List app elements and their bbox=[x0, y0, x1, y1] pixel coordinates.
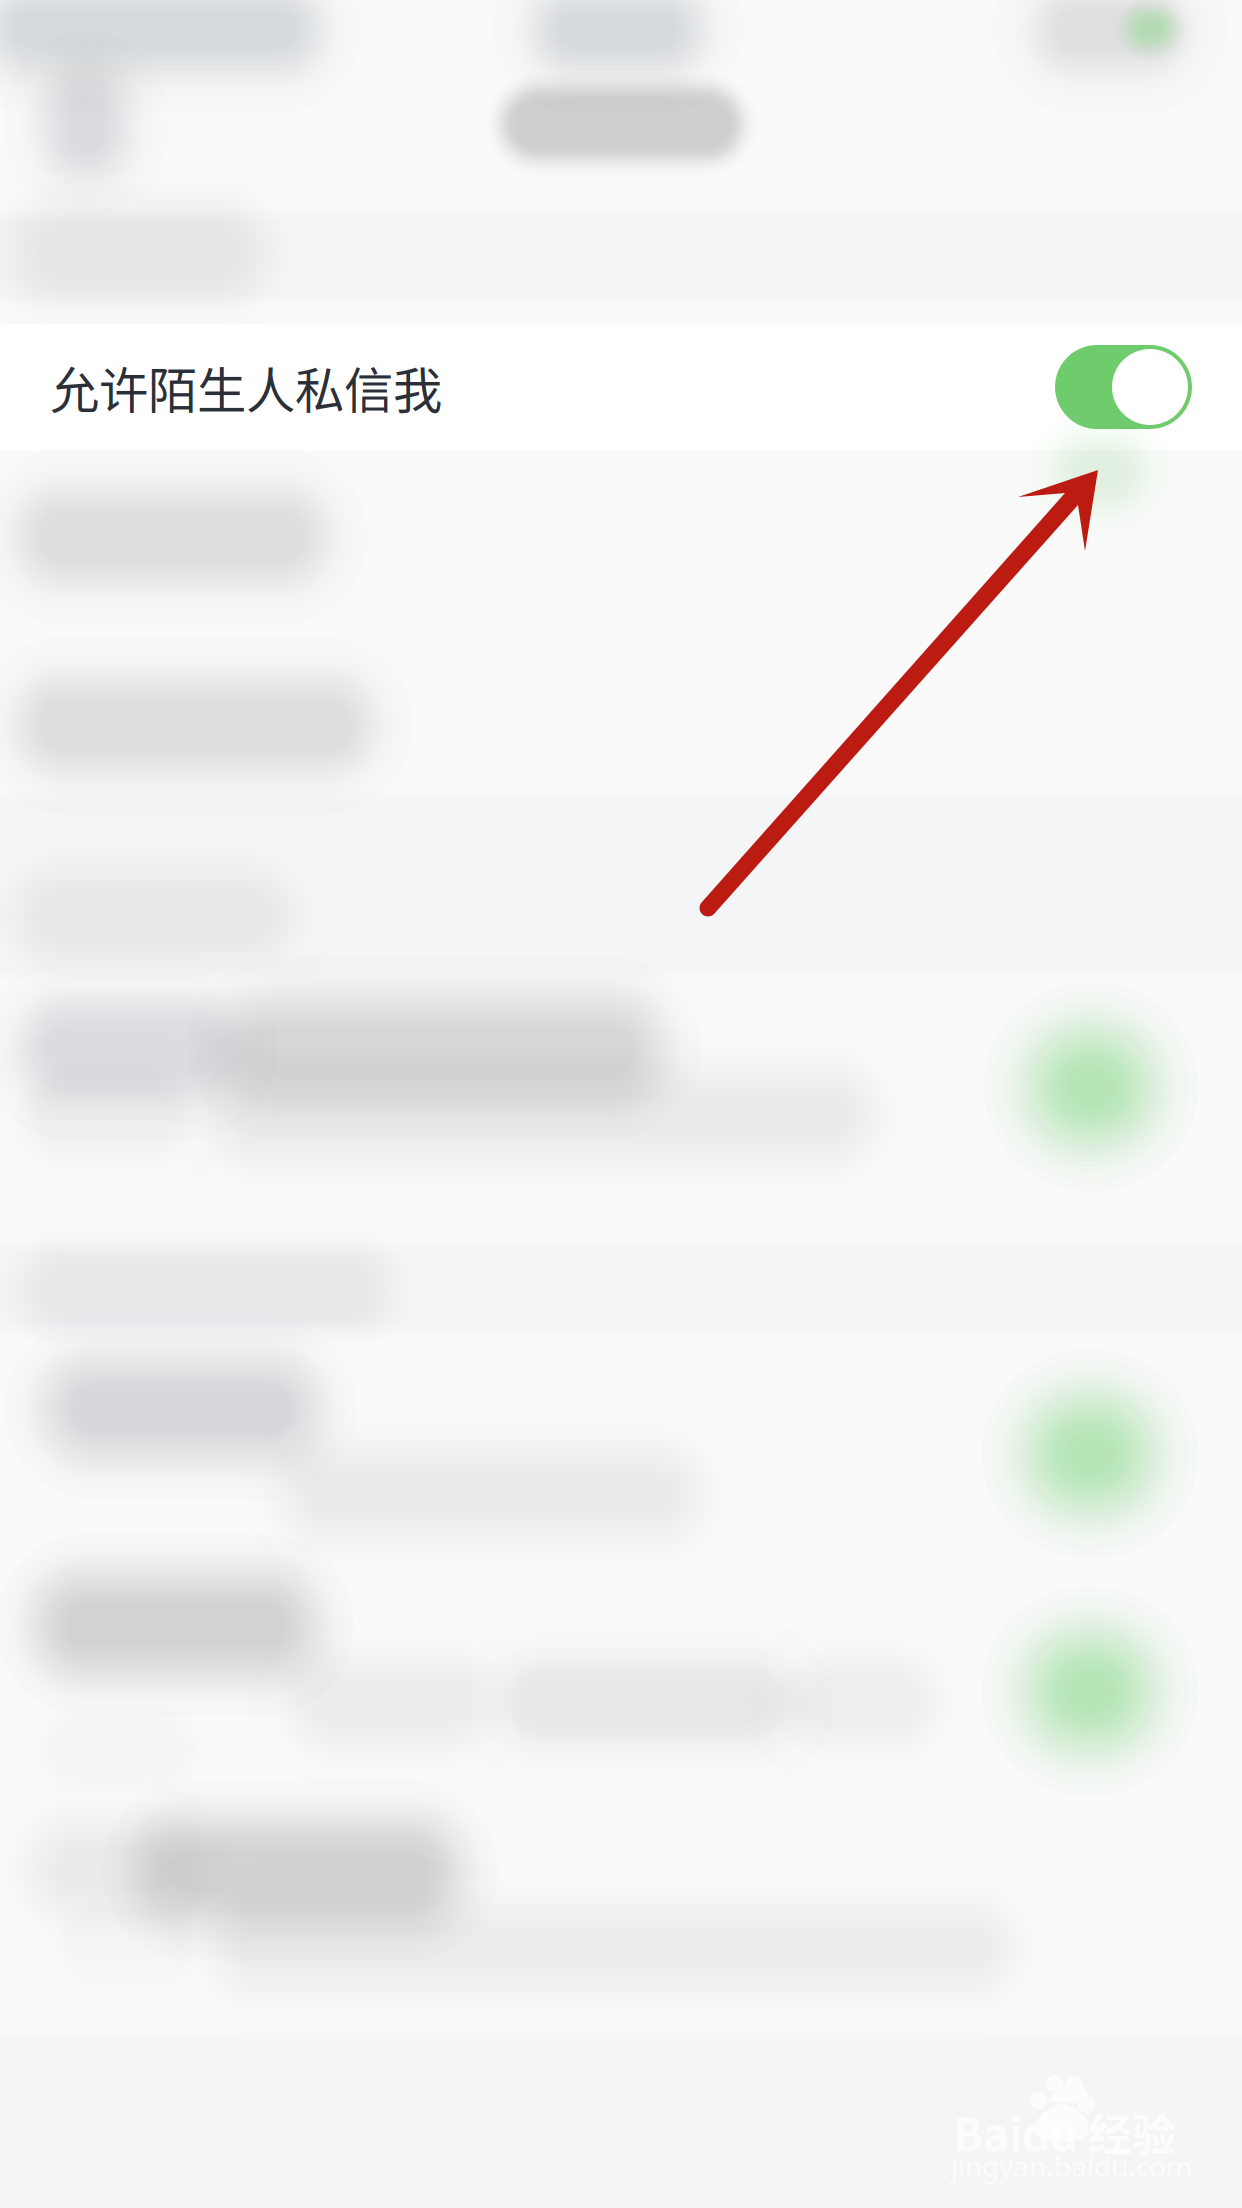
staticText: 允许陌生人私信我 bbox=[50, 351, 442, 423]
button[interactable]: 允许陌生人私信我 bbox=[0, 324, 1242, 450]
staticText: Baidu 经验 bbox=[953, 2100, 1176, 2164]
